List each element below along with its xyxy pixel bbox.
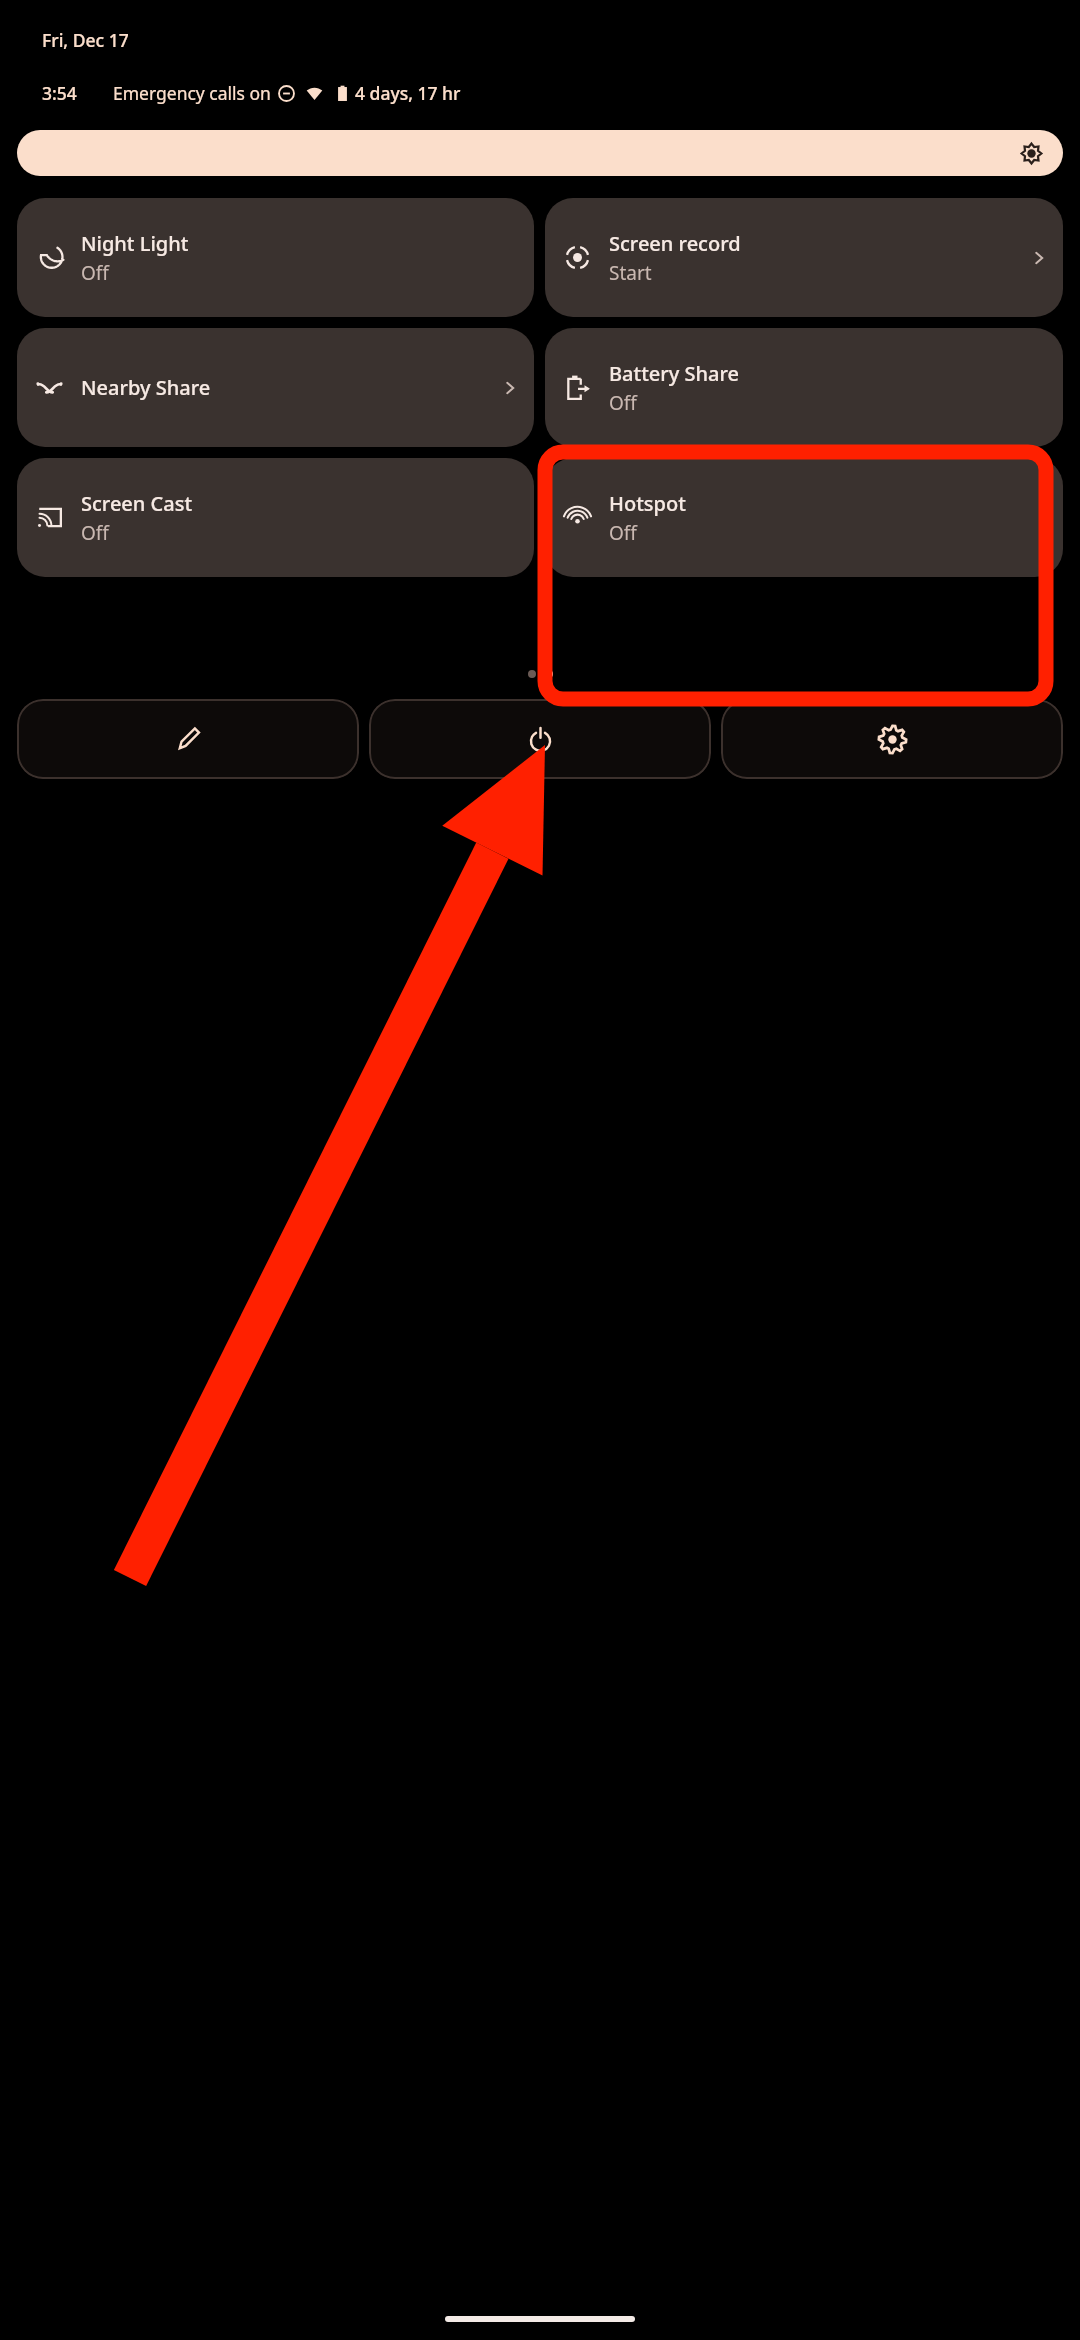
staticText: Emergency calls on [113,81,271,105]
staticText: Fri, Dec 17 [42,28,129,52]
staticText: Battery Share [609,360,740,387]
staticText: Off [81,520,109,546]
button[interactable]: Hotspot [545,458,1063,577]
button[interactable]: Night Light [17,198,534,317]
staticText: Screen record [609,230,741,257]
staticText: 4 days, 17 hr [355,81,461,105]
staticText: Off [609,520,637,546]
staticText: Off [609,390,637,416]
button[interactable]: Nearby Share [17,328,534,447]
button[interactable]: Screen record [545,198,1063,317]
button[interactable]: Settings [721,699,1063,779]
staticText: Screen Cast [81,490,193,517]
button[interactable]: Power [369,699,711,779]
button[interactable]: Brightness [17,130,1063,176]
staticText: Night Light [81,230,189,257]
button[interactable]: Battery Share [545,328,1063,447]
staticText: Hotspot [609,490,686,517]
staticText: Nearby Share [81,374,211,401]
button[interactable]: Screen Cast [17,458,534,577]
staticText: Start [609,260,652,286]
staticText: Off [81,260,109,286]
button[interactable]: Edit [17,699,359,779]
staticText: 3:54 [42,81,77,105]
